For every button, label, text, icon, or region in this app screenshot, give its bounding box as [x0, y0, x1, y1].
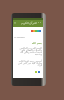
- button[interactable]: أجمعين وبعد فهذا كتاب مبارك فيه خير كثير…: [15, 59, 42, 66]
- button[interactable]: Al-Fatihah: [14, 36, 25, 39]
- staticText: أجمعين وبعد فهذا كتاب مبارك فيه خير كثير…: [15, 59, 42, 66]
- button[interactable]: Bookmark: [35, 71, 37, 73]
- button[interactable]: القرآن الكريم: [21, 21, 38, 25]
- staticText: Al-Fatihah: [14, 36, 25, 39]
- button[interactable]: [39, 30, 41, 32]
- button[interactable]: الحمد لله رب العالمين والصلاة والسلام عل…: [15, 46, 42, 55]
- staticText: الحمد لله رب العالمين والصلاة والسلام عل…: [15, 46, 42, 55]
- button[interactable]: [31, 30, 33, 32]
- button[interactable]: بسم الله الرحمن الرحيم: [25, 41, 42, 45]
- button[interactable]: [37, 30, 39, 32]
- button[interactable]: [33, 30, 35, 32]
- button[interactable]: [13, 20, 43, 27]
- button[interactable]: Share: [38, 71, 40, 73]
- staticText: بسم الله الرحمن الرحيم: [25, 41, 42, 45]
- staticText: القرآن الكريم: [21, 21, 38, 25]
- button[interactable]: [35, 30, 37, 32]
- button[interactable]: Menu: [14, 22, 16, 24]
